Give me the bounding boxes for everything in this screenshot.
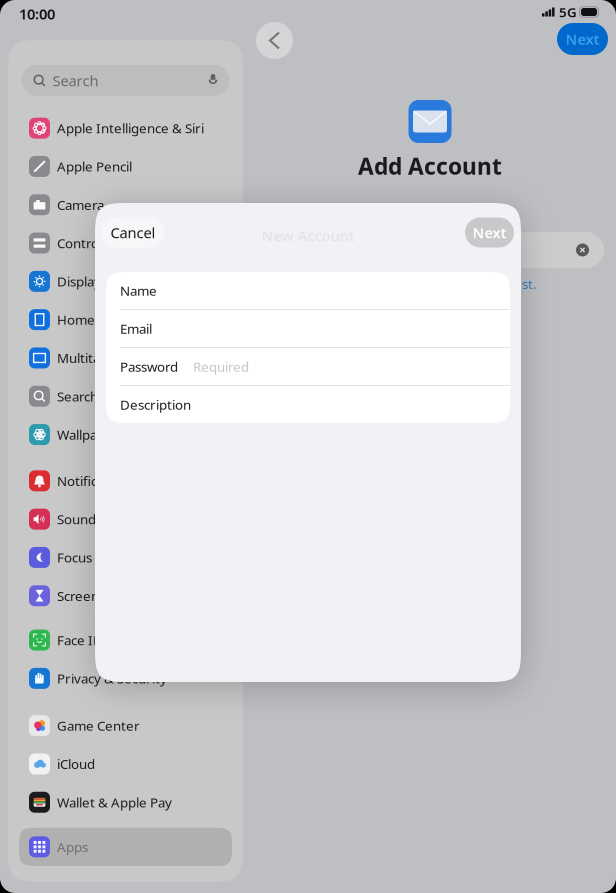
button[interactable]: Next bbox=[557, 23, 608, 55]
staticText: Focus bbox=[57, 549, 92, 566]
staticText: Password bbox=[120, 358, 178, 375]
staticText: Next bbox=[565, 29, 599, 49]
staticText: Add Account bbox=[358, 151, 502, 181]
staticText: Search bbox=[52, 71, 98, 90]
button[interactable]: Control Center bbox=[19, 224, 232, 262]
button[interactable]: Apple Intelligence & Siri bbox=[19, 109, 232, 147]
staticText: Apps bbox=[57, 838, 88, 856]
staticText: 10:00 bbox=[19, 4, 55, 23]
button[interactable]: Sounds bbox=[19, 500, 232, 538]
button[interactable]: Wallpaper bbox=[19, 415, 232, 454]
staticText: Control Center bbox=[57, 234, 148, 252]
button[interactable]: Multitasking & Gestures bbox=[19, 339, 232, 377]
button[interactable]: Focus bbox=[19, 538, 232, 577]
staticText: Next bbox=[472, 223, 506, 242]
staticText: Privacy & Security bbox=[57, 669, 167, 687]
button[interactable]: Apps bbox=[19, 828, 232, 866]
staticText: Email bbox=[120, 320, 152, 337]
button[interactable]: Home Screen & App Library bbox=[19, 300, 232, 339]
button[interactable]: Privacy & Security bbox=[19, 659, 232, 697]
button[interactable]: Wallet & Apple Pay bbox=[19, 783, 232, 821]
staticText: Game Center bbox=[57, 717, 140, 734]
button[interactable]: Game Center bbox=[19, 706, 232, 745]
staticText: st. bbox=[522, 275, 537, 293]
button[interactable]: iCloud bbox=[19, 745, 232, 783]
staticText: Name bbox=[120, 282, 157, 299]
staticText: New Account bbox=[261, 226, 354, 245]
button[interactable]: Search bbox=[19, 377, 232, 415]
staticText: Screen Time bbox=[57, 587, 132, 605]
button[interactable]: Next bbox=[465, 217, 514, 247]
staticText: Sounds bbox=[57, 510, 102, 528]
button[interactable]: Face ID & Passcode bbox=[19, 621, 232, 659]
button[interactable]: Back bbox=[256, 22, 293, 59]
staticText: Display & Brightness bbox=[57, 272, 184, 290]
staticText: Wallpaper bbox=[57, 426, 119, 443]
button[interactable]: Screen Time bbox=[19, 577, 232, 615]
staticText: Home Screen & App Library bbox=[57, 311, 227, 328]
staticText: Description bbox=[120, 396, 191, 413]
staticText: Cancel bbox=[110, 223, 155, 242]
button[interactable]: Display & Brightness bbox=[19, 262, 232, 300]
staticText: Face ID & Passcode bbox=[57, 631, 176, 649]
button[interactable]: Apple Pencil bbox=[19, 147, 232, 186]
staticText: Notifications bbox=[57, 472, 134, 490]
staticText: Apple Pencil bbox=[57, 158, 132, 175]
button[interactable]: Camera bbox=[19, 186, 232, 224]
staticText: Multitasking & Gestures bbox=[57, 349, 204, 367]
staticText: Required bbox=[193, 358, 249, 375]
staticText: Camera bbox=[57, 196, 104, 214]
staticText: iCloud bbox=[57, 755, 95, 773]
button[interactable]: Notifications bbox=[19, 462, 232, 500]
button[interactable]: Cancel bbox=[101, 217, 165, 248]
staticText: Apple Intelligence & Siri bbox=[57, 119, 204, 137]
staticText: 5G bbox=[559, 3, 577, 21]
staticText: Search bbox=[57, 387, 98, 405]
staticText: Wallet & Apple Pay bbox=[57, 793, 172, 811]
